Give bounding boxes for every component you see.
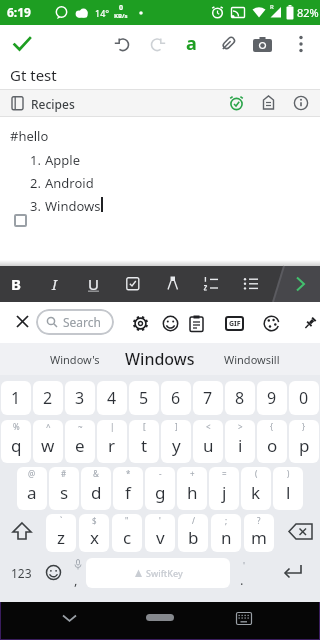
button[interactable]: Search	[36, 309, 114, 335]
staticText: c	[123, 526, 132, 549]
staticText: 82%	[297, 5, 319, 20]
button[interactable]: U	[88, 274, 99, 294]
staticText: ]	[175, 421, 178, 432]
button[interactable]	[114, 36, 131, 52]
staticText: 7	[203, 387, 213, 409]
button[interactable]: Windows	[115, 343, 205, 375]
staticText: n	[221, 526, 232, 549]
staticText: 4	[107, 387, 117, 409]
button[interactable]: SwiftKey	[86, 558, 230, 588]
button[interactable]	[203, 277, 219, 291]
button[interactable]: 0	[289, 381, 319, 415]
staticText: Gt test	[10, 65, 57, 85]
button[interactable]: Recipes	[0, 89, 320, 117]
button[interactable]	[132, 315, 149, 332]
button[interactable]: ?	[244, 514, 274, 552]
button[interactable]: 8	[225, 381, 255, 415]
staticText: ^	[46, 421, 51, 432]
button[interactable]	[302, 315, 317, 332]
staticText: 1.	[30, 151, 41, 169]
button[interactable]: &	[81, 467, 111, 510]
staticText: m	[251, 526, 267, 549]
button[interactable]: 1	[1, 381, 31, 415]
staticText: |	[110, 421, 115, 432]
button[interactable]	[288, 523, 314, 541]
button[interactable]: <	[193, 420, 223, 463]
button[interactable]	[220, 35, 236, 52]
button[interactable]: 9	[257, 381, 287, 415]
button[interactable]	[236, 612, 252, 625]
button[interactable]: -	[145, 467, 175, 510]
button[interactable]	[166, 276, 179, 292]
button[interactable]: (	[241, 467, 271, 510]
button[interactable]	[253, 37, 273, 52]
button[interactable]: "	[112, 514, 142, 552]
button[interactable]	[189, 315, 204, 332]
button[interactable]: a	[186, 31, 197, 56]
button[interactable]	[296, 35, 306, 53]
button[interactable]: ~	[65, 420, 95, 463]
staticText: j	[222, 481, 227, 504]
button[interactable]: 6	[161, 381, 191, 415]
button[interactable]: >	[225, 420, 255, 463]
button[interactable]: $	[79, 514, 109, 552]
button[interactable]: `	[46, 514, 76, 552]
button[interactable]: ]	[161, 420, 191, 463]
button[interactable]: 123	[2, 558, 40, 588]
staticText: GIF	[229, 319, 241, 329]
staticText: k	[251, 481, 261, 504]
button[interactable]	[162, 315, 179, 332]
button[interactable]: I	[52, 274, 57, 294]
button[interactable]: GIF	[225, 316, 244, 331]
button[interactable]: *	[113, 467, 143, 510]
staticText: Apple	[45, 151, 80, 169]
button[interactable]: #	[49, 467, 79, 510]
button[interactable]: '	[145, 514, 175, 552]
button[interactable]	[282, 563, 304, 581]
button[interactable]: @	[17, 467, 47, 510]
button[interactable]: /	[178, 514, 208, 552]
button[interactable]: {	[257, 420, 287, 463]
staticText: Windowsill	[224, 352, 280, 367]
button[interactable]: )	[273, 467, 303, 510]
button[interactable]: |	[97, 420, 127, 463]
button[interactable]: }	[289, 420, 319, 463]
button[interactable]	[295, 277, 307, 292]
button[interactable]	[10, 521, 34, 545]
button[interactable]	[14, 214, 27, 227]
button[interactable]	[263, 315, 281, 332]
button[interactable]: 7	[193, 381, 223, 415]
button[interactable]: 4	[97, 381, 127, 415]
button[interactable]: 5	[129, 381, 159, 415]
button[interactable]: Window's	[30, 343, 120, 375]
button[interactable]: 3	[65, 381, 95, 415]
button[interactable]: =	[209, 467, 239, 510]
button[interactable]	[261, 95, 276, 111]
button[interactable]: B	[11, 274, 21, 294]
button[interactable]: 2	[33, 381, 63, 415]
button[interactable]: ^	[33, 420, 63, 463]
button[interactable]	[126, 277, 140, 291]
staticText: Search	[63, 314, 101, 330]
button[interactable]	[293, 95, 309, 111]
button[interactable]	[13, 36, 32, 52]
button[interactable]: +	[177, 467, 207, 510]
staticText: ,	[74, 571, 78, 589]
button[interactable]	[149, 36, 166, 52]
button[interactable]: ;	[211, 514, 241, 552]
staticText: h	[187, 481, 198, 504]
button[interactable]	[243, 277, 259, 291]
button[interactable]	[146, 614, 174, 621]
staticText: 9	[267, 387, 277, 409]
button[interactable]	[11, 96, 24, 111]
staticText: 123	[11, 565, 32, 581]
button[interactable]	[228, 95, 245, 112]
staticText: }	[302, 421, 306, 432]
button[interactable]: Windowsill	[207, 343, 297, 375]
button[interactable]: [	[129, 420, 159, 463]
staticText: %	[13, 421, 20, 432]
button[interactable]	[16, 315, 29, 328]
button[interactable]	[45, 564, 62, 581]
button[interactable]: %	[1, 420, 31, 463]
button[interactable]	[62, 614, 77, 623]
